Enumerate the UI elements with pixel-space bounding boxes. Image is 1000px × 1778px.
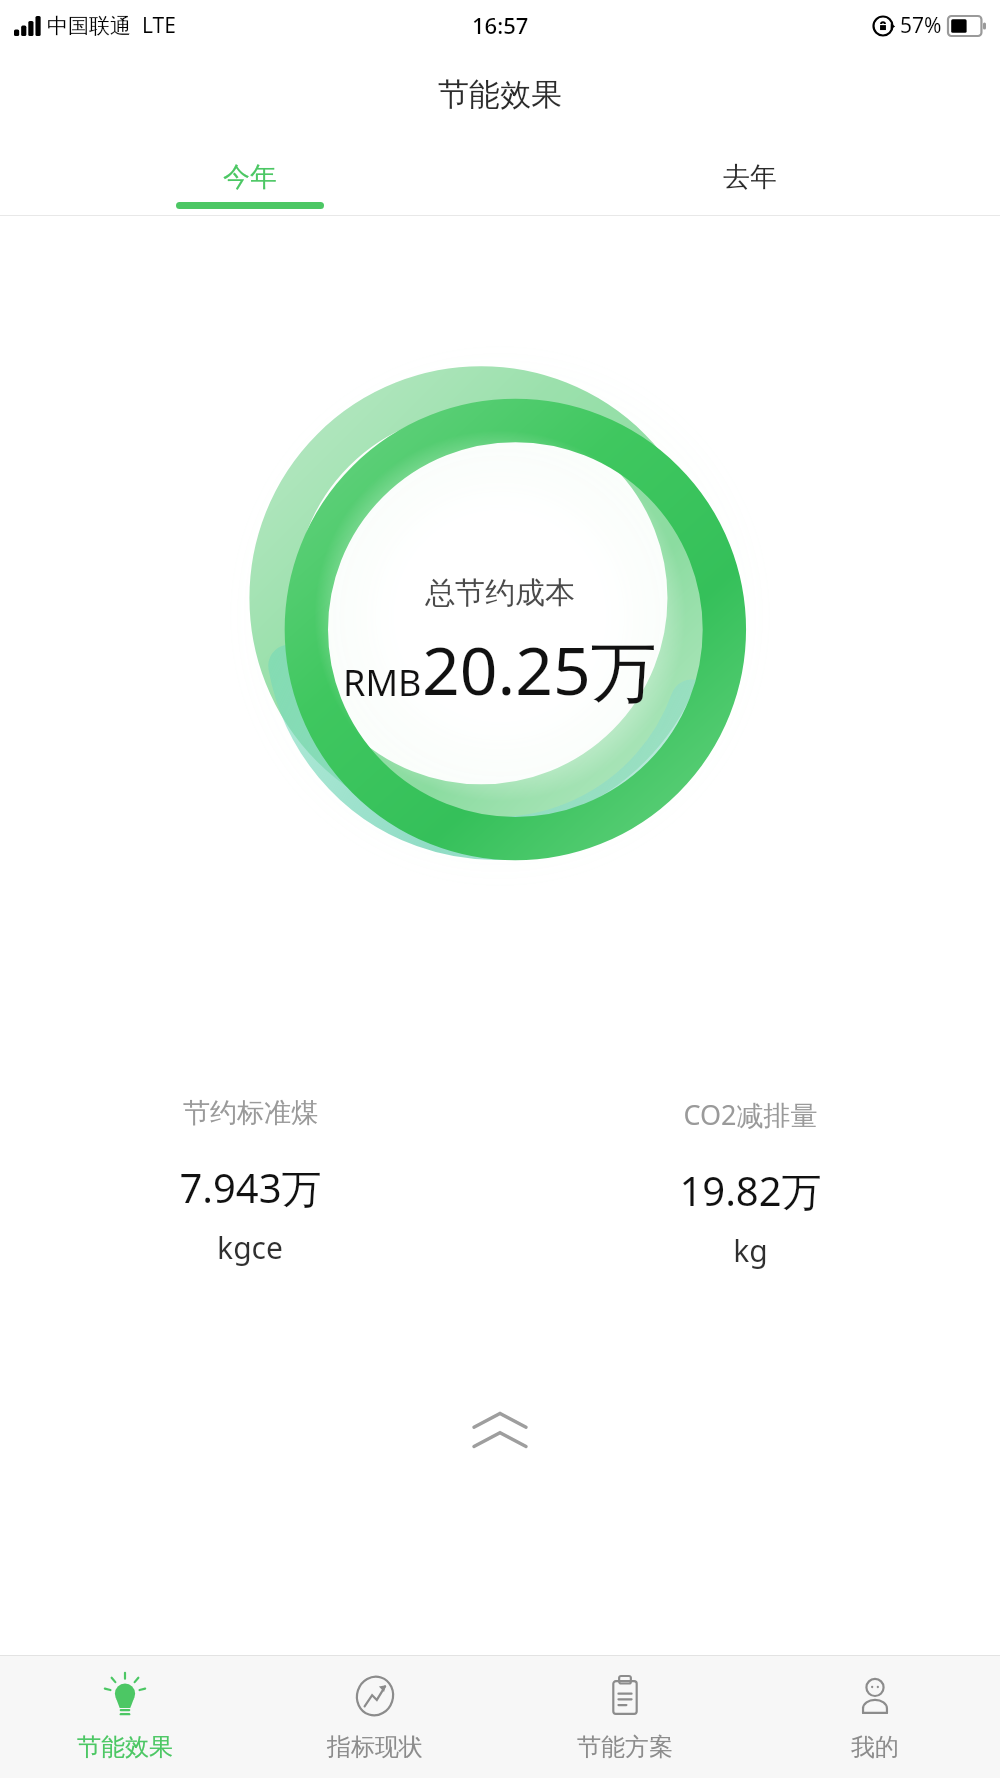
- button[interactable]: 今年: [0, 138, 500, 215]
- staticText: 节约标准煤: [183, 1096, 318, 1130]
- button[interactable]: Scroll up: [457, 1401, 543, 1467]
- button[interactable]: CO2减排量: [500, 1096, 1000, 1271]
- staticText: CO2减排量: [683, 1096, 818, 1133]
- staticText: LTE: [142, 11, 176, 40]
- staticText: 节能方案: [577, 1732, 673, 1762]
- staticText: 去年: [723, 160, 777, 194]
- button[interactable]: 指标现状: [250, 1656, 500, 1778]
- button[interactable]: 节能效果: [0, 1656, 250, 1778]
- staticText: 19.82万: [679, 1163, 822, 1218]
- staticText: 指标现状: [327, 1732, 423, 1762]
- staticText: 中国联通: [47, 13, 131, 39]
- staticText: 7.943万: [179, 1160, 322, 1215]
- staticText: 今年: [223, 160, 277, 194]
- button[interactable]: 我的: [750, 1656, 1000, 1778]
- staticText: RMB: [343, 658, 422, 707]
- button[interactable]: 节能方案: [500, 1656, 750, 1778]
- staticText: 节能效果: [438, 75, 562, 114]
- staticText: 20.25万: [422, 624, 657, 714]
- staticText: kgce: [217, 1227, 283, 1268]
- staticText: 57%: [900, 11, 942, 40]
- staticText: 16:57: [472, 10, 529, 40]
- button[interactable]: 节约标准煤: [0, 1096, 500, 1268]
- staticText: 我的: [851, 1732, 899, 1762]
- button[interactable]: 去年: [500, 138, 1000, 215]
- staticText: kg: [733, 1230, 768, 1271]
- staticText: 节能效果: [77, 1732, 173, 1762]
- staticText: 总节约成本: [425, 574, 575, 612]
